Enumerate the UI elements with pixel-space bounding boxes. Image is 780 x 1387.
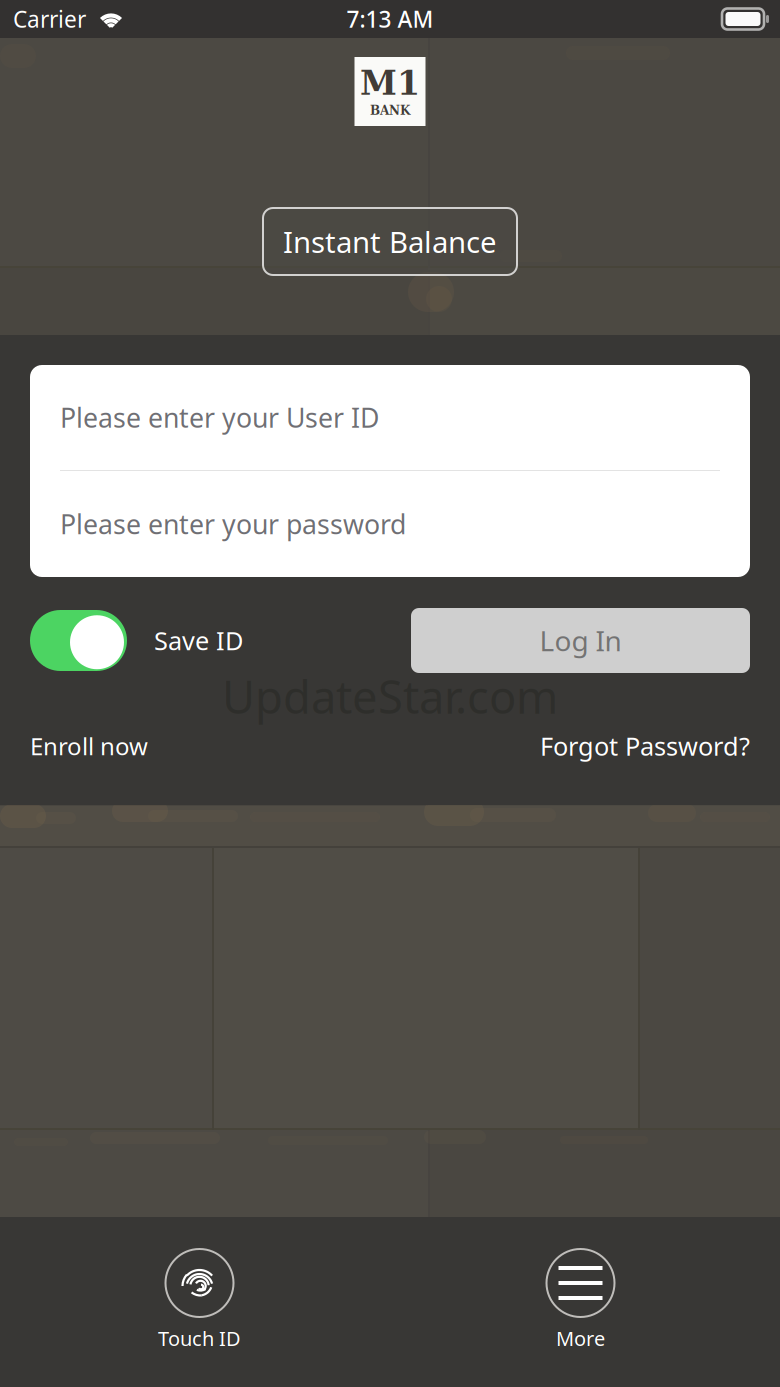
staticText: Instant Balance bbox=[283, 222, 497, 261]
button[interactable]: Save ID bbox=[30, 610, 243, 671]
staticText: Enroll now bbox=[30, 730, 148, 762]
staticText: Please enter your password bbox=[60, 506, 406, 542]
staticText: More bbox=[556, 1325, 605, 1352]
button[interactable]: Touch ID bbox=[119, 1217, 280, 1387]
button[interactable]: Please enter your password bbox=[30, 471, 750, 577]
button[interactable]: More bbox=[500, 1217, 661, 1387]
button[interactable]: Log In bbox=[411, 608, 750, 673]
staticText: Log In bbox=[539, 622, 621, 659]
staticText: Please enter your User ID bbox=[60, 400, 379, 435]
staticText: Save ID bbox=[154, 624, 243, 657]
staticText: Touch ID bbox=[158, 1325, 241, 1352]
button[interactable]: Please enter your User ID bbox=[30, 365, 750, 470]
button[interactable]: Instant Balance bbox=[263, 208, 517, 275]
staticText: Carrier bbox=[13, 4, 86, 34]
staticText: M1 bbox=[360, 63, 420, 103]
button[interactable]: Enroll now bbox=[30, 730, 148, 762]
staticText: Forgot Password? bbox=[540, 729, 750, 763]
staticText: BANK bbox=[370, 103, 410, 118]
staticText: UpdateStar.com bbox=[222, 666, 558, 726]
button[interactable]: Forgot Password? bbox=[540, 729, 750, 763]
staticText: 7:13 AM bbox=[346, 4, 433, 34]
